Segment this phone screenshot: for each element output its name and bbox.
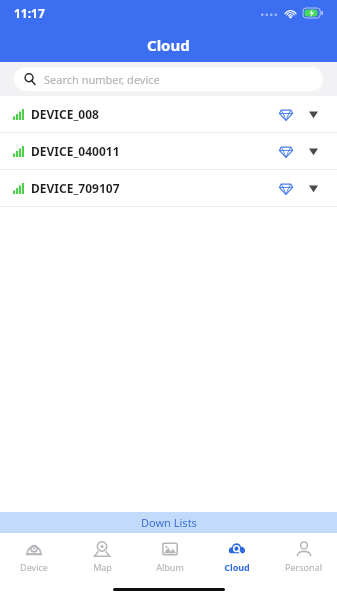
button[interactable]: DEVICE_008	[0, 96, 337, 132]
button[interactable]: DEVICE_040011	[0, 133, 337, 169]
button[interactable]: Map	[68, 540, 136, 573]
button[interactable]: DEVICE_709107	[0, 170, 337, 206]
button[interactable]: Diamond	[275, 140, 297, 162]
button[interactable]: Expand	[303, 104, 323, 124]
staticText: Search number, device	[44, 72, 160, 87]
staticText: DEVICE_040011	[31, 143, 120, 159]
staticText: Cloud	[147, 35, 190, 55]
staticText: 11:17	[14, 5, 45, 21]
button[interactable]: Device	[0, 540, 68, 573]
button[interactable]: Expand	[303, 178, 323, 198]
staticText: Cloud	[224, 561, 250, 573]
button[interactable]: Diamond	[275, 177, 297, 199]
button[interactable]: Search number, device	[14, 67, 323, 91]
button[interactable]: Diamond	[275, 103, 297, 125]
staticText: Map	[93, 561, 112, 573]
staticText: Down Lists	[141, 515, 197, 530]
button[interactable]: Down Lists	[0, 512, 337, 533]
button[interactable]: Album	[136, 540, 203, 573]
button[interactable]: Expand	[303, 141, 323, 161]
staticText: Device	[20, 561, 48, 573]
staticText: Album	[156, 561, 184, 573]
staticText: DEVICE_008	[31, 106, 99, 122]
button[interactable]: Cloud	[203, 540, 270, 573]
button[interactable]: Personal	[270, 540, 337, 573]
staticText: DEVICE_709107	[31, 180, 120, 196]
staticText: Personal	[285, 561, 322, 573]
